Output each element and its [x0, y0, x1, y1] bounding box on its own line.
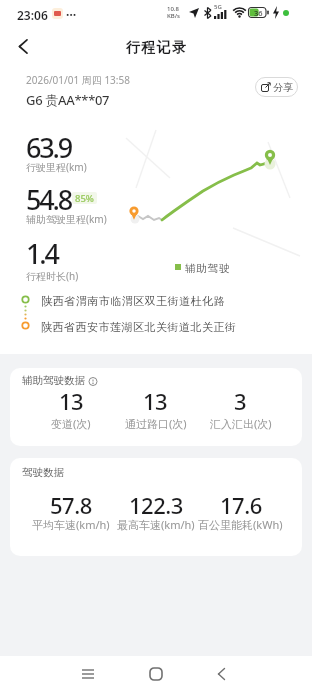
staticText: 陕西省渭南市临渭区双王街道杜化路: [41, 294, 225, 308]
staticText: 辅助驾驶数据: [22, 374, 85, 387]
staticText: 平均车速(km/h): [32, 517, 110, 532]
staticText: 54.8: [26, 181, 71, 218]
staticText: 行驶里程(km): [26, 160, 87, 174]
staticText: 最高车速(km/h): [117, 517, 195, 532]
staticText: 57.8: [50, 490, 92, 520]
staticText: 分享: [273, 81, 293, 94]
staticText: 百公里能耗(kWh): [198, 517, 283, 532]
staticText: 17.6: [220, 490, 262, 520]
staticText: 23:06: [17, 7, 48, 23]
staticText: 陕西省西安市莲湖区北关街道北关正街: [41, 320, 237, 334]
staticText: 2026/01/01 周四 13:58: [26, 73, 130, 87]
button[interactable]: 辅助驾驶数据: [10, 368, 302, 446]
button[interactable]: 陕西省渭南市临渭区双王街道杜化路: [41, 294, 225, 308]
button[interactable]: [217, 668, 226, 680]
staticText: 辅助驾驶: [185, 262, 231, 275]
staticText: 1.4: [26, 235, 58, 272]
staticText: 5G: [214, 3, 222, 11]
button[interactable]: [82, 669, 94, 679]
staticText: G6 贵AA***07: [26, 91, 110, 109]
staticText: 变道(次): [51, 416, 91, 431]
staticText: 122.3: [129, 490, 183, 520]
staticText: 汇入汇出(次): [210, 416, 272, 431]
button[interactable]: 陕西省西安市莲湖区北关街道北关正街: [41, 320, 237, 334]
staticText: 85%: [75, 192, 94, 204]
staticText: 3: [234, 386, 247, 416]
staticText: 36: [254, 8, 263, 18]
button[interactable]: 分享: [255, 77, 298, 97]
staticText: 行程记录: [125, 39, 187, 57]
staticText: 行程时长(h): [26, 269, 79, 283]
staticText: 63.9: [26, 129, 71, 166]
staticText: 辅助驾驶里程(km): [26, 212, 107, 226]
button[interactable]: [149, 667, 163, 681]
staticText: 驾驶数据: [22, 466, 64, 479]
staticText: 通过路口(次): [125, 416, 187, 431]
staticText: 10.8: [167, 5, 179, 13]
button[interactable]: 驾驶数据: [10, 458, 302, 556]
button[interactable]: [18, 39, 29, 54]
staticText: KB/s: [167, 12, 180, 20]
staticText: 13: [59, 386, 84, 416]
staticText: 13: [143, 386, 168, 416]
staticText: …: [66, 3, 77, 19]
